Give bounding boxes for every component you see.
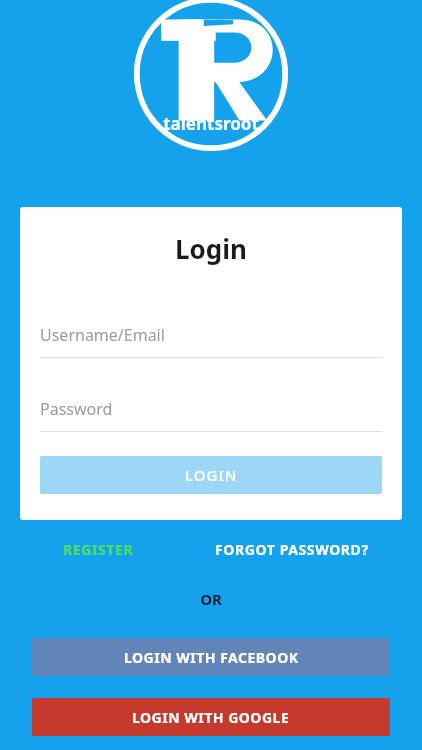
staticText: LOGIN WITH FACEBOOK xyxy=(124,648,299,667)
staticText: Username/Email xyxy=(40,324,165,346)
staticText: LOGIN WITH GOOGLE xyxy=(132,708,290,727)
staticText: FORGOT PASSWORD? xyxy=(215,540,369,559)
staticText: Login xyxy=(20,231,402,266)
staticText: Password xyxy=(40,398,113,420)
staticText: OR xyxy=(0,589,422,609)
staticText: REGISTER xyxy=(63,540,134,559)
button[interactable]: REGISTER xyxy=(18,540,179,559)
staticText: talentsroot xyxy=(0,112,422,135)
button[interactable]: LOGIN WITH FACEBOOK xyxy=(32,638,390,676)
staticText: LOGIN xyxy=(185,465,238,485)
button[interactable]: LOGIN xyxy=(40,456,382,494)
button[interactable]: LOGIN WITH GOOGLE xyxy=(32,698,390,736)
button[interactable]: FORGOT PASSWORD? xyxy=(179,540,404,559)
